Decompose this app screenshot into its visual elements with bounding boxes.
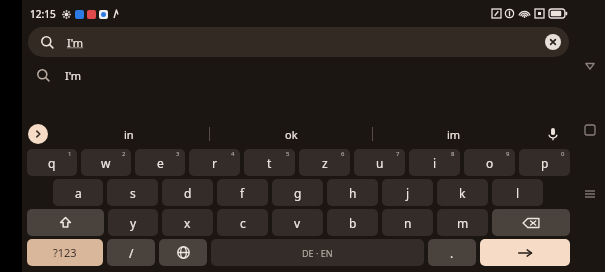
staticText: 7 <box>396 150 400 158</box>
staticText: ok <box>285 127 298 142</box>
staticText: 3 <box>176 150 180 158</box>
button[interactable]: p <box>519 149 570 176</box>
button[interactable]: Home <box>579 119 601 141</box>
staticText: b <box>349 215 357 231</box>
staticText: 9 <box>506 150 510 158</box>
staticText: 5 <box>286 150 290 158</box>
staticText: 1 <box>68 150 72 158</box>
staticText: I'm <box>67 35 84 50</box>
staticText: 2 <box>122 150 126 158</box>
staticText: h <box>349 185 357 201</box>
staticText: c <box>240 215 246 231</box>
staticText: d <box>184 185 192 201</box>
button[interactable]: Clear query <box>545 34 561 50</box>
button[interactable]: x <box>162 209 213 236</box>
button[interactable]: . <box>428 239 476 266</box>
staticText: 12:15 <box>30 7 56 21</box>
button[interactable]: e <box>135 149 185 176</box>
button[interactable]: n <box>382 209 433 236</box>
button[interactable]: i <box>409 149 460 176</box>
other: Shift <box>27 209 104 236</box>
staticText: j <box>406 185 410 201</box>
button[interactable]: g <box>272 179 323 206</box>
button[interactable]: a <box>53 179 103 206</box>
button[interactable]: I'm <box>22 57 575 93</box>
other: Backspace <box>492 209 570 236</box>
staticText: r <box>212 155 217 171</box>
button[interactable]: z <box>299 149 350 176</box>
staticText: i <box>433 155 437 171</box>
staticText: w <box>101 155 111 171</box>
other: Change keyboard language <box>159 239 207 266</box>
staticText: m <box>457 215 469 231</box>
button[interactable]: im <box>373 119 535 149</box>
staticText: im <box>447 127 461 142</box>
button[interactable]: in <box>48 119 209 149</box>
staticText: y <box>130 215 137 231</box>
staticText: I'm <box>65 68 82 83</box>
button[interactable]: Expand toolbar <box>28 124 48 144</box>
button[interactable]: r <box>189 149 240 176</box>
button[interactable]: o <box>464 149 515 176</box>
staticText: e <box>157 155 164 171</box>
staticText: f <box>240 185 245 201</box>
button[interactable]: DE · EN <box>211 239 424 266</box>
staticText: s <box>130 185 136 201</box>
button[interactable]: w <box>81 149 131 176</box>
staticText: / <box>129 245 134 261</box>
button[interactable]: t <box>244 149 295 176</box>
button[interactable]: f <box>217 179 268 206</box>
button[interactable]: ?123 <box>27 239 103 266</box>
button[interactable]: k <box>437 179 488 206</box>
button[interactable]: Voice input <box>535 119 571 149</box>
button[interactable]: m <box>437 209 488 236</box>
button[interactable]: q <box>27 149 77 176</box>
staticText: 8 <box>451 150 455 158</box>
staticText: t <box>267 155 272 171</box>
staticText: . <box>450 245 454 261</box>
staticText: u <box>376 155 384 171</box>
staticText: a <box>75 185 82 201</box>
staticText: 6 <box>341 150 345 158</box>
staticText: g <box>294 185 302 201</box>
button[interactable]: y <box>108 209 158 236</box>
button[interactable]: c <box>217 209 268 236</box>
staticText: n <box>404 215 412 231</box>
staticText: l <box>516 185 520 201</box>
staticText: z <box>322 155 328 171</box>
button[interactable]: s <box>107 179 158 206</box>
button[interactable]: Back <box>579 55 601 77</box>
staticText: in <box>124 127 134 142</box>
staticText: o <box>486 155 494 171</box>
staticText: p <box>541 155 549 171</box>
staticText: q <box>48 155 56 171</box>
button[interactable]: Shift <box>27 209 104 236</box>
staticText: ?123 <box>53 245 77 260</box>
button[interactable]: I'm <box>28 27 569 57</box>
button[interactable]: Backspace <box>492 209 570 236</box>
other: Enter <box>480 239 570 266</box>
staticText: k <box>459 185 466 201</box>
button[interactable]: / <box>107 239 155 266</box>
button[interactable]: l <box>492 179 543 206</box>
button[interactable]: Change keyboard language <box>159 239 207 266</box>
button[interactable]: u <box>354 149 405 176</box>
staticText: v <box>294 215 301 231</box>
staticText: 4 <box>231 150 235 158</box>
button[interactable]: Enter <box>480 239 570 266</box>
button[interactable]: v <box>272 209 323 236</box>
staticText: 0 <box>561 150 565 158</box>
button[interactable]: j <box>382 179 433 206</box>
button[interactable]: h <box>327 179 378 206</box>
button[interactable]: Recent apps <box>579 183 601 205</box>
button[interactable]: b <box>327 209 378 236</box>
button[interactable]: d <box>162 179 213 206</box>
button[interactable]: ok <box>210 119 372 149</box>
staticText: x <box>184 215 191 231</box>
staticText: DE · EN <box>302 247 333 259</box>
